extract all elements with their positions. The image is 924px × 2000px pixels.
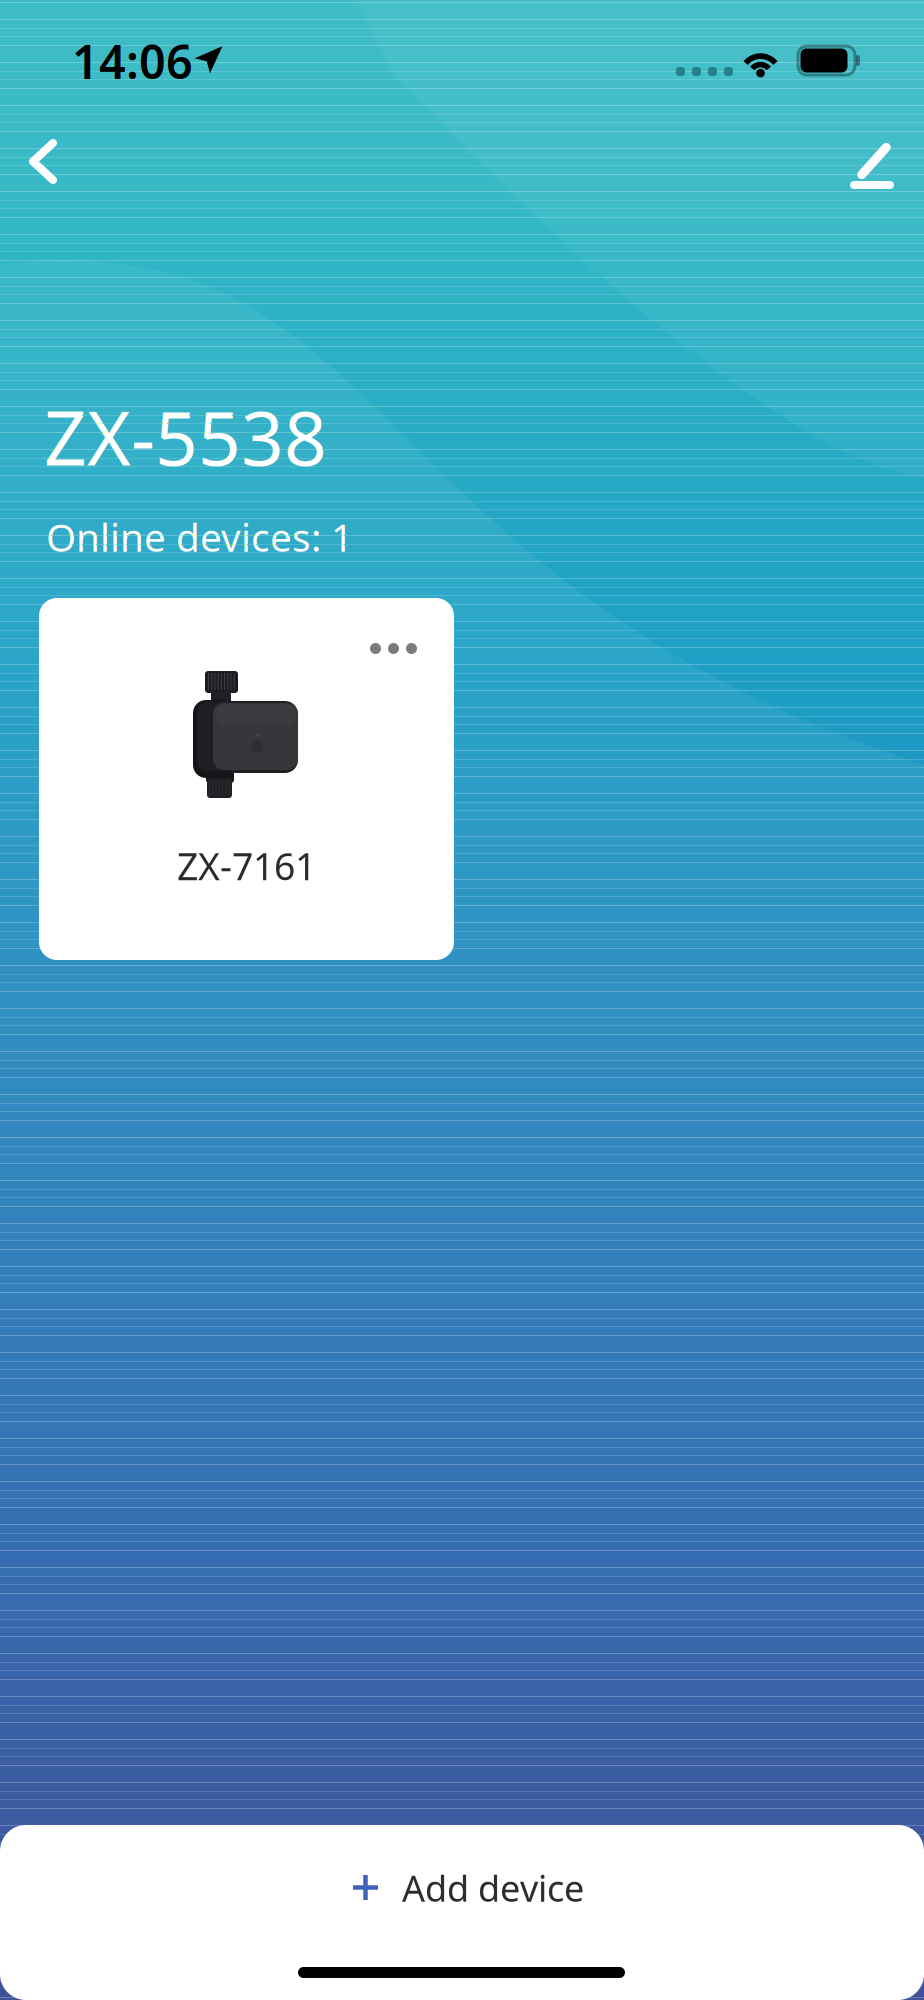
button[interactable]: ZX-7161 — [39, 598, 454, 960]
staticText: 14:06 — [72, 30, 193, 92]
button[interactable]: Back — [0, 110, 94, 200]
button[interactable]: Edit — [820, 110, 924, 200]
staticText: Online devices: 1 — [46, 511, 353, 562]
staticText: ZX-7161 — [177, 841, 316, 891]
button[interactable]: Add device — [0, 1825, 924, 1951]
staticText: ZX-5538 — [44, 387, 327, 486]
staticText: Add device — [402, 1864, 584, 1912]
